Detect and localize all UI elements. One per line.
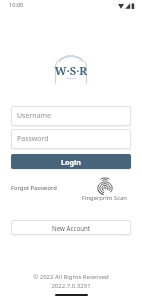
button[interactable]: Fingerprint Scan (82, 178, 127, 202)
staticText: Username (17, 111, 52, 121)
button[interactable]: Password (11, 129, 131, 149)
button[interactable]: Login (11, 154, 131, 169)
button[interactable]: Forgot Password (9, 182, 59, 194)
staticText: 10:00 (9, 1, 24, 9)
button[interactable]: New Account (11, 220, 131, 235)
staticText: 2022.7.0.3251 (51, 282, 91, 290)
staticText: New Account (52, 224, 91, 232)
staticText: Forgot Password (11, 184, 57, 192)
staticText: W·S·R (0, 63, 142, 78)
button[interactable]: Username (11, 106, 131, 126)
staticText: Fingerprint Scan (82, 194, 127, 202)
staticText: © 2022 All Rights Reserved (33, 273, 109, 281)
staticText: Login (61, 157, 81, 167)
staticText: Password (17, 134, 49, 144)
